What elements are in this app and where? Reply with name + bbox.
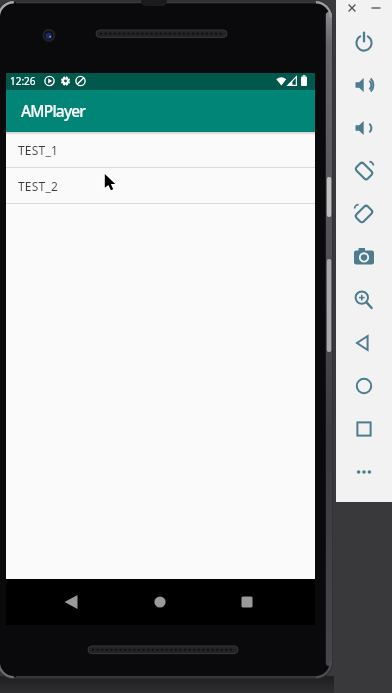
button[interactable] bbox=[348, 327, 380, 359]
button[interactable] bbox=[348, 370, 380, 402]
button[interactable] bbox=[348, 241, 380, 273]
button[interactable] bbox=[348, 198, 380, 230]
staticText: TEST_1 bbox=[18, 142, 58, 158]
button[interactable] bbox=[367, 0, 385, 17]
staticText: AMPlayer bbox=[21, 100, 86, 121]
button[interactable]: TEST_1 bbox=[6, 132, 315, 168]
button[interactable] bbox=[231, 586, 263, 618]
button[interactable] bbox=[348, 69, 380, 101]
button[interactable] bbox=[343, 0, 361, 17]
button[interactable] bbox=[348, 155, 380, 187]
button[interactable] bbox=[348, 413, 380, 445]
button[interactable] bbox=[348, 112, 380, 144]
button[interactable]: TEST_2 bbox=[6, 168, 315, 204]
button[interactable] bbox=[348, 26, 380, 58]
button[interactable] bbox=[55, 586, 87, 618]
button[interactable] bbox=[348, 284, 380, 316]
button[interactable] bbox=[348, 456, 380, 488]
staticText: 12:26 bbox=[10, 74, 36, 88]
button[interactable] bbox=[144, 586, 176, 618]
staticText: TEST_2 bbox=[18, 178, 58, 194]
